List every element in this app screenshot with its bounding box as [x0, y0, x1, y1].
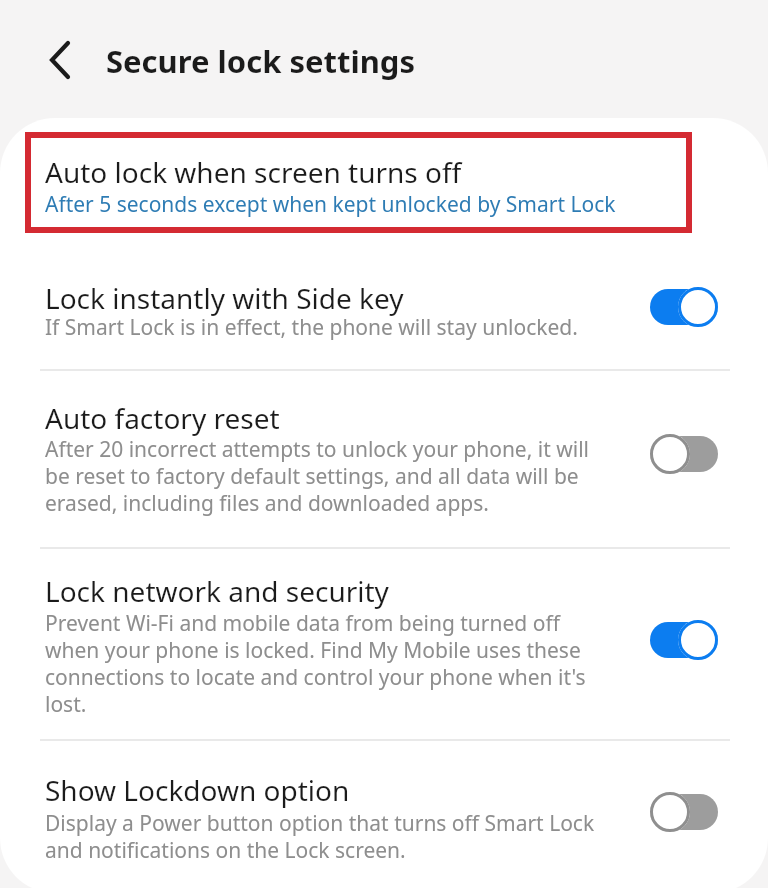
button[interactable] [650, 434, 718, 474]
staticText: Lock network and security [45, 572, 389, 610]
staticText: Lock instantly with Side key [45, 279, 404, 317]
button[interactable] [46, 40, 76, 80]
button[interactable] [650, 620, 718, 660]
button[interactable]: Auto factory reset [0, 397, 768, 637]
staticText: After 20 incorrect attempts to unlock yo… [45, 435, 590, 517]
button[interactable]: Lock network and security [0, 570, 768, 738]
button[interactable]: Auto lock when screen turns off [25, 132, 692, 233]
button[interactable] [650, 792, 718, 832]
button[interactable]: Lock instantly with Side key [0, 277, 768, 370]
button[interactable]: Show Lockdown option [0, 769, 768, 884]
staticText: Show Lockdown option [45, 771, 350, 809]
staticText: After 5 seconds except when kept unlocke… [45, 190, 616, 219]
staticText: If Smart Lock is in effect, the phone wi… [45, 313, 578, 342]
staticText: Auto factory reset [45, 399, 280, 437]
staticText: Auto lock when screen turns off [45, 153, 462, 191]
staticText: Display a Power button option that turns… [45, 809, 595, 864]
staticText: Prevent Wi-Fi and mobile data from being… [45, 609, 586, 718]
staticText: Secure lock settings [106, 40, 415, 82]
button[interactable] [650, 287, 718, 327]
